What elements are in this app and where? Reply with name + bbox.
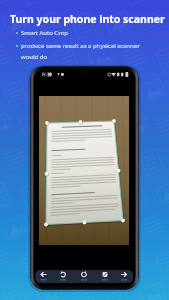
staticText: produce same result as a physical scanne… — [21, 42, 144, 61]
staticText: Smart Auto Crop — [21, 29, 68, 37]
staticText: Turn your phone into scanner — [10, 12, 165, 26]
